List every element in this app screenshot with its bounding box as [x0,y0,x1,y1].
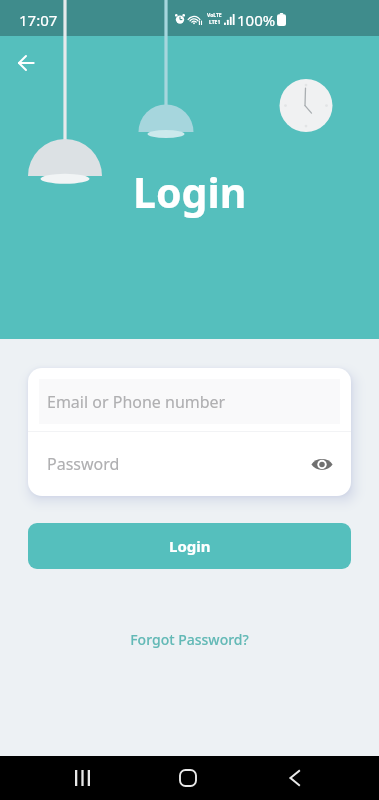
button[interactable]: Recent apps [58,756,106,800]
button[interactable]: Back [270,756,318,800]
staticText: VoLTE [207,12,222,19]
button[interactable]: Email or Phone number [39,379,340,424]
staticText: Login [133,164,247,220]
staticText: LTE1 [209,19,221,26]
button[interactable]: Back [8,45,44,81]
button[interactable]: Home [164,756,212,800]
staticText: 100% [237,10,276,30]
staticText: Email or Phone number [47,391,226,413]
button[interactable]: Login [28,523,351,569]
staticText: Login [169,536,211,556]
button[interactable]: Show password [307,449,337,479]
staticText: Password [47,453,120,475]
staticText: Forgot Password? [0,630,379,649]
staticText: 17:07 [19,10,58,30]
button[interactable]: Password [28,432,351,496]
